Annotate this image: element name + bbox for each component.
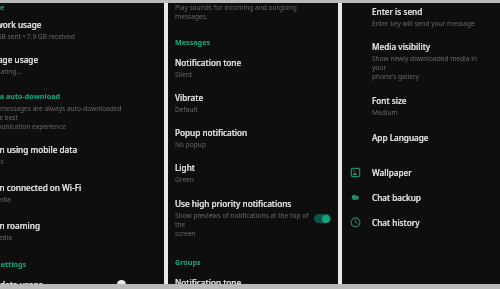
button[interactable]: Low data usage: [0, 272, 130, 289]
staticText: Notification tone: [175, 277, 242, 288]
staticText: Font size: [372, 95, 407, 106]
staticText: When roaming: [0, 220, 40, 231]
staticText: Wallpaper: [372, 167, 412, 178]
staticText: Play sounds for incoming and outgoing me…: [175, 3, 297, 21]
staticText: Voice messages are always auto-downloade…: [0, 104, 130, 131]
staticText: Enter key will send your message: [372, 19, 475, 28]
staticText: 25.1 GB sent • 7.9 GB received: [0, 32, 75, 41]
button[interactable]: Enter is send: [372, 6, 492, 29]
button[interactable]: Low data usage toggle: [117, 280, 126, 289]
staticText: No popup: [175, 140, 206, 149]
button[interactable]: Notification tone: [175, 50, 331, 80]
staticText: Enter is send: [372, 6, 423, 17]
staticText: Calculating…: [0, 67, 22, 76]
button[interactable]: Chat backup: [350, 178, 492, 203]
button[interactable]: Media visibility: [372, 29, 492, 82]
button[interactable]: When roaming: [0, 205, 130, 243]
button[interactable]: App Language: [372, 118, 492, 144]
staticText: Show newly downloaded media in your phon…: [372, 54, 492, 81]
staticText: When using mobile data: [0, 144, 78, 155]
staticText: Show previews of notifications at the to…: [175, 211, 314, 238]
staticText: Chat backup: [372, 192, 421, 203]
staticText: When connected on Wi-Fi: [0, 182, 82, 193]
button[interactable]: Popup notification: [175, 115, 331, 150]
staticText: Network usage: [0, 19, 42, 30]
staticText: Photos: [0, 157, 4, 166]
button[interactable]: Storage usage: [0, 42, 130, 77]
staticText: Usage: [0, 2, 5, 12]
staticText: Low data usage: [0, 279, 44, 289]
button[interactable]: Notification tone: [175, 270, 331, 289]
staticText: Media auto-download: [0, 91, 61, 101]
staticText: Green: [175, 175, 194, 184]
staticText: Groups: [175, 257, 201, 267]
button[interactable]: Font size: [372, 82, 492, 118]
staticText: Silent: [175, 70, 193, 79]
button[interactable]: When connected on Wi-Fi: [0, 167, 130, 205]
button[interactable]: Network usage: [0, 12, 130, 42]
button[interactable]: Use high priority notifications: [175, 185, 331, 239]
staticText: Messages: [175, 37, 211, 47]
staticText: No media: [0, 233, 13, 242]
staticText: Storage usage: [0, 54, 39, 65]
staticText: Vibrate: [175, 92, 204, 103]
staticText: Notification tone: [175, 57, 242, 68]
staticText: Call settings: [0, 259, 27, 269]
button[interactable]: Chat history: [350, 203, 492, 228]
staticText: App Language: [372, 132, 429, 143]
staticText: Default: [175, 105, 198, 114]
button[interactable]: Vibrate: [175, 80, 331, 115]
staticText: Chat history: [372, 217, 420, 228]
button[interactable]: When using mobile data: [0, 131, 130, 167]
button[interactable]: Wallpaper: [350, 144, 492, 178]
staticText: Medium: [372, 108, 398, 117]
staticText: Media visibility: [372, 41, 431, 52]
button[interactable]: Light: [175, 150, 331, 185]
staticText: Popup notification: [175, 127, 248, 138]
staticText: Use high priority notifications: [175, 198, 292, 209]
staticText: Light: [175, 162, 195, 173]
staticText: All media: [0, 195, 11, 204]
button[interactable]: [314, 214, 331, 223]
